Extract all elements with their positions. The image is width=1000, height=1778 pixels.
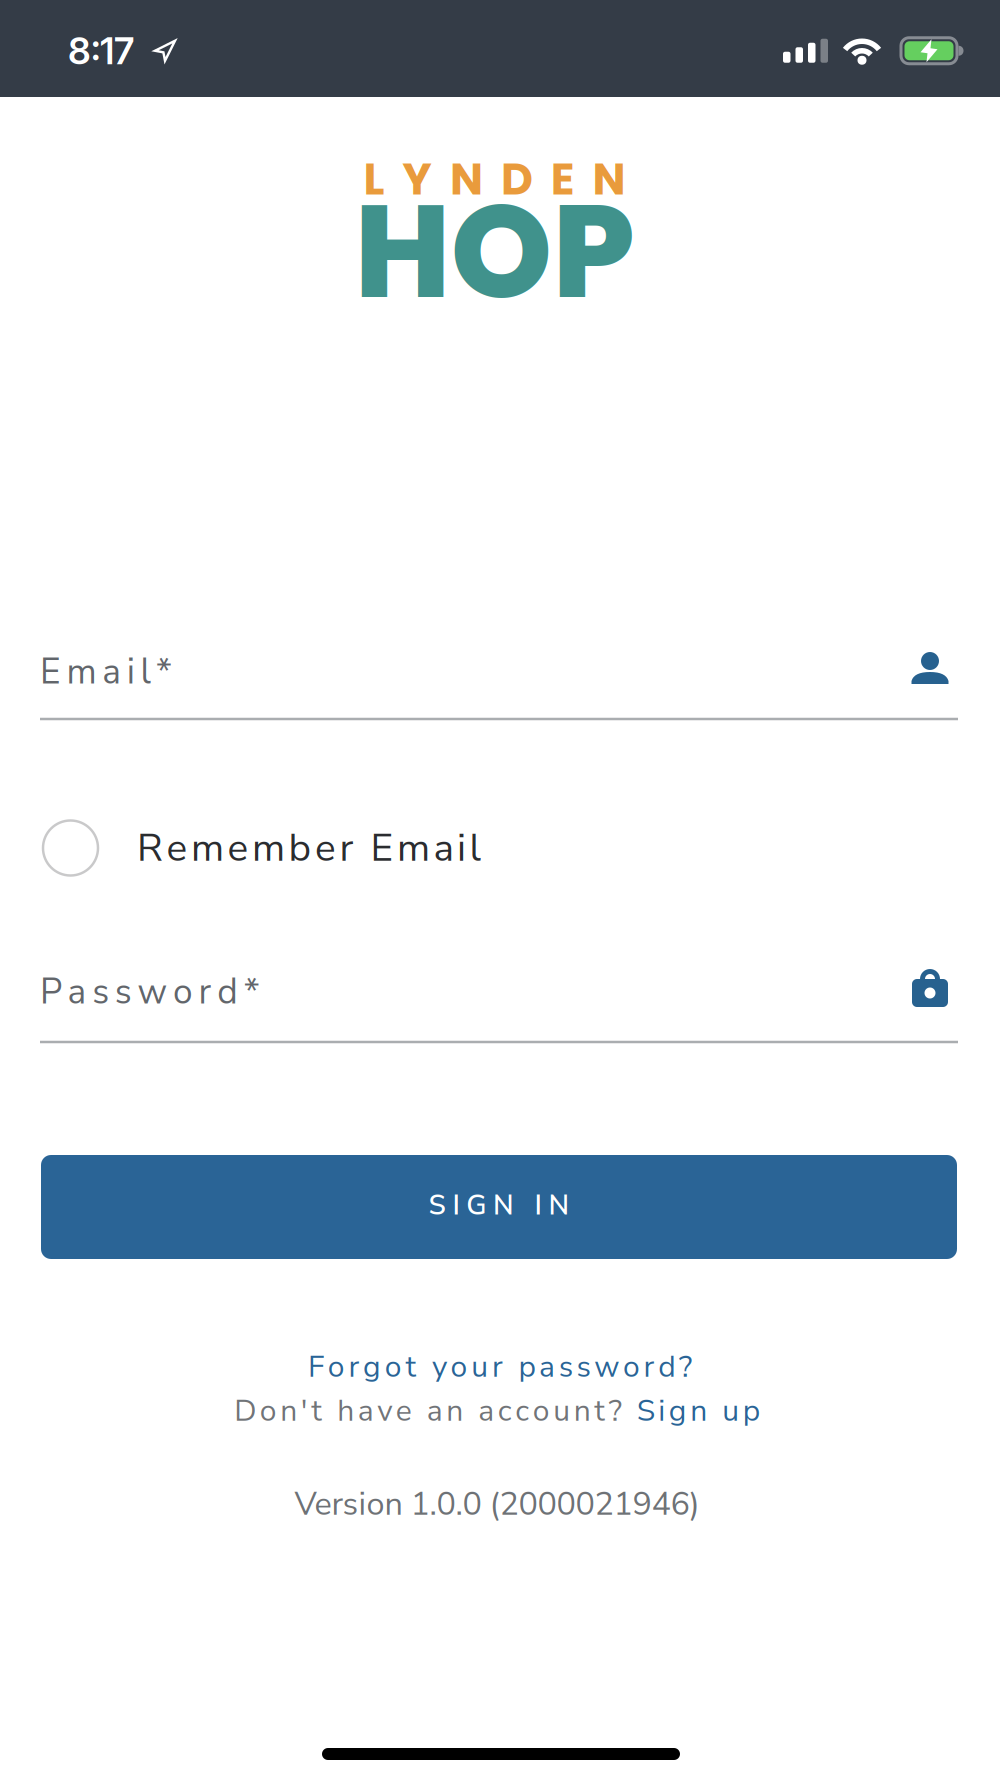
staticText: i (658, 1390, 665, 1431)
staticText: s (559, 1346, 573, 1387)
staticText: t (594, 1390, 605, 1431)
staticText: G (466, 1187, 486, 1224)
staticText: g (363, 1346, 381, 1387)
staticText: w (594, 1346, 619, 1387)
staticText: o (173, 968, 193, 1016)
staticText: a (102, 648, 121, 696)
staticText: o (260, 1390, 277, 1431)
staticText: o (623, 1346, 640, 1387)
staticText: n (446, 1390, 463, 1431)
staticText: r (199, 968, 212, 1016)
staticText: F (308, 1346, 324, 1387)
staticText: m (252, 822, 285, 874)
staticText: a (478, 1390, 494, 1431)
staticText: p (743, 1390, 760, 1431)
staticText: m (67, 648, 97, 696)
button[interactable]: Email (0, 0, 1000, 1778)
button[interactable]: F (308, 1346, 692, 1387)
staticText: E (40, 648, 61, 696)
staticText: r (492, 1346, 503, 1387)
staticText: N (450, 148, 483, 210)
staticText: c (498, 1390, 512, 1431)
staticText: P (40, 968, 62, 1016)
staticText: I (535, 1187, 542, 1224)
staticText: S (637, 1390, 655, 1431)
staticText: n (280, 1390, 297, 1431)
staticText: L (363, 148, 384, 210)
staticText: D (234, 1390, 256, 1431)
staticText: o (533, 1390, 550, 1431)
staticText: c (515, 1390, 529, 1431)
staticText: e (315, 822, 336, 874)
staticText: a (358, 1390, 374, 1431)
staticText: r (644, 1346, 655, 1387)
staticText: r (348, 1346, 359, 1387)
staticText: Version 1.0.0 (2000021946) (294, 1482, 699, 1526)
staticText: d (217, 968, 238, 1016)
staticText: E (370, 822, 393, 874)
button[interactable]: Remember Email (0, 0, 1000, 1778)
staticText: a (68, 968, 87, 1016)
staticText: e (227, 822, 248, 874)
staticText: g (669, 1390, 687, 1431)
staticText: i (127, 648, 135, 696)
staticText: o (451, 1346, 468, 1387)
staticText: o (385, 1346, 402, 1387)
staticText: r (339, 822, 353, 874)
staticText: l (140, 648, 150, 696)
staticText: * (244, 968, 260, 1016)
staticText: N (548, 1187, 569, 1224)
staticText: l (469, 822, 480, 874)
staticText: o (328, 1346, 345, 1387)
staticText: s (92, 968, 109, 1016)
staticText: w (137, 968, 167, 1016)
staticText: a (539, 1346, 555, 1387)
staticText: Y (402, 148, 432, 210)
button[interactable]: Password (0, 0, 1000, 1778)
staticText: e (166, 822, 187, 874)
staticText: p (518, 1346, 535, 1387)
staticText: u (722, 1390, 739, 1431)
staticText: ? (609, 1390, 622, 1431)
staticText: R (137, 822, 163, 874)
staticText: a (427, 1390, 443, 1431)
staticText: * (156, 648, 172, 696)
staticText: n (690, 1390, 707, 1431)
staticText: S (429, 1187, 446, 1224)
staticText: N (493, 1187, 514, 1224)
staticText: E (551, 148, 575, 210)
staticText: e (396, 1390, 412, 1431)
staticText: HOP (354, 161, 634, 342)
staticText: t (311, 1390, 322, 1431)
staticText: i (457, 822, 466, 874)
button[interactable]: S (637, 1390, 760, 1431)
staticText: t (405, 1346, 416, 1387)
staticText: N (592, 148, 625, 210)
button[interactable]: S (41, 1155, 957, 1259)
staticText: m (191, 822, 224, 874)
staticText: y (432, 1346, 447, 1387)
staticText: u (553, 1390, 570, 1431)
staticText: h (337, 1390, 354, 1431)
staticText: u (471, 1346, 488, 1387)
staticText: ? (679, 1346, 692, 1387)
staticText: s (115, 968, 132, 1016)
staticText: n (574, 1390, 591, 1431)
staticText: D (501, 148, 533, 210)
staticText: v (377, 1390, 392, 1431)
staticText: I (452, 1187, 459, 1224)
staticText: a (433, 822, 453, 874)
staticText: ' (301, 1390, 308, 1431)
staticText: b (288, 822, 311, 874)
staticText: m (397, 822, 430, 874)
staticText: d (658, 1346, 675, 1387)
